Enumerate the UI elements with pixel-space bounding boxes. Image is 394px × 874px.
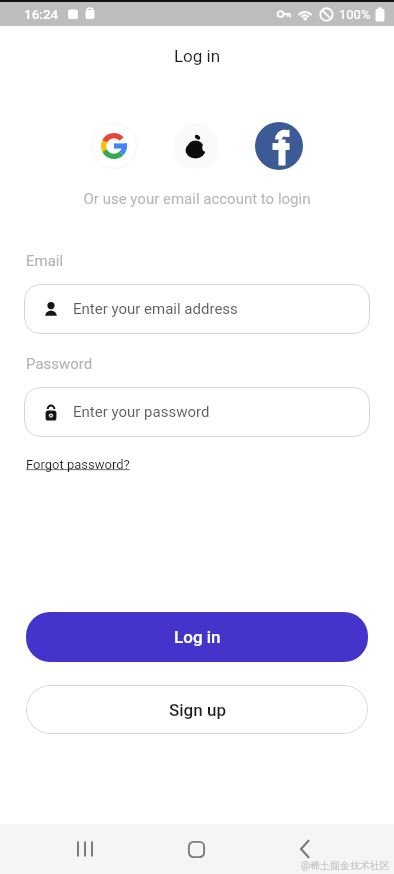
staticText: Email (26, 252, 64, 270)
button[interactable] (173, 123, 219, 169)
button[interactable]: Enter your email address (24, 284, 370, 334)
button[interactable] (255, 122, 303, 170)
button[interactable] (63, 827, 107, 871)
button[interactable]: Sign up (26, 685, 368, 734)
button[interactable]: Enter your password (24, 387, 370, 437)
staticText: Enter your password (73, 403, 210, 421)
staticText: Log in (174, 627, 221, 647)
button[interactable] (91, 123, 137, 169)
staticText: Or use your email account to login (0, 190, 394, 208)
staticText: @稀土掘金技术社区 (301, 859, 390, 872)
staticText: 100% (339, 7, 371, 22)
staticText: Enter your email address (73, 300, 238, 318)
staticText: 16:24 (24, 6, 59, 22)
staticText: Password (26, 355, 93, 373)
button[interactable]: Forgot password? (26, 457, 130, 472)
staticText: Log in (0, 46, 394, 66)
button[interactable]: Log in (26, 612, 368, 662)
staticText: Sign up (169, 700, 226, 720)
button[interactable] (174, 827, 218, 871)
button[interactable] (283, 827, 327, 871)
